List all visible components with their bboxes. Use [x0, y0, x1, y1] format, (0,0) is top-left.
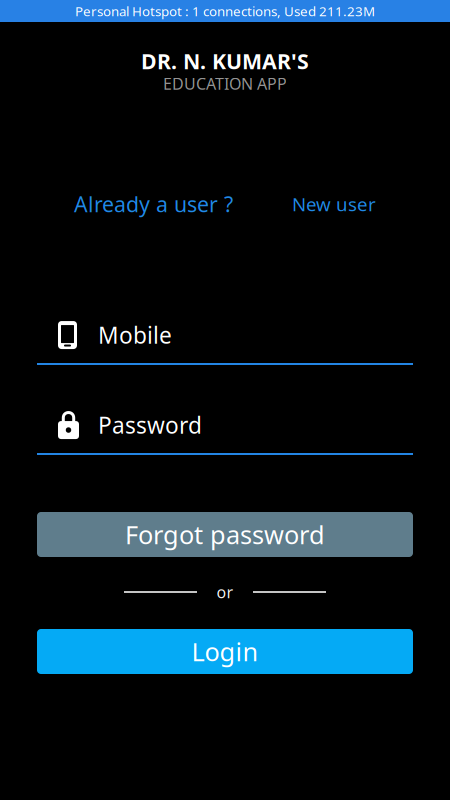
button[interactable]: Already a user ?	[74, 190, 233, 218]
staticText: Mobile	[98, 320, 172, 350]
button[interactable]: New user	[292, 190, 376, 218]
staticText: Password	[98, 410, 202, 440]
staticText: DR. N. KUMAR'S	[141, 47, 309, 75]
staticText: EDUCATION APP	[163, 73, 287, 94]
staticText: New user	[292, 192, 376, 216]
button[interactable]: Forgot password	[37, 512, 413, 557]
staticText: Login	[191, 635, 258, 668]
staticText: Already a user ?	[74, 190, 233, 218]
button[interactable]: Password	[37, 410, 413, 455]
staticText: Forgot password	[125, 518, 325, 551]
button[interactable]: Mobile	[37, 320, 413, 365]
button[interactable]: Login	[37, 629, 413, 674]
staticText: Personal Hotspot : 1 connections, Used 2…	[75, 2, 375, 20]
staticText: or	[216, 581, 233, 603]
